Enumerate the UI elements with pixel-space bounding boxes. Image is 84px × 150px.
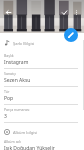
- staticText: Başlık: [4, 53, 14, 58]
- staticText: Albüm adı: [4, 139, 21, 144]
- staticText: 3: [4, 113, 7, 120]
- staticText: Instagram: [4, 59, 29, 66]
- button[interactable]: Düzenle: [64, 28, 78, 42]
- staticText: Parça numarası: [4, 107, 30, 112]
- button[interactable]: Başlık: [0, 51, 84, 69]
- button[interactable]: Diğer seçenekler: [70, 6, 82, 18]
- button[interactable]: Geri: [2, 6, 14, 18]
- staticText: Tür: [4, 89, 10, 94]
- button[interactable]: Şarkı Bilgisi: [0, 38, 84, 48]
- button[interactable]: Parça numarası: [0, 105, 84, 123]
- button[interactable]: Sanatçı: [0, 69, 84, 87]
- button[interactable]: Albüm adı: [0, 137, 84, 150]
- staticText: Albüm bilgisi: [13, 130, 38, 135]
- staticText: Işık Doğudan Yükselir: [4, 145, 55, 150]
- button[interactable]: Tür: [0, 87, 84, 105]
- staticText: Sezen Aksu: [4, 77, 31, 84]
- staticText: Pop: [4, 95, 14, 102]
- button[interactable]: Kaydet: [58, 6, 70, 18]
- button[interactable]: Albüm bilgisi: [0, 127, 84, 137]
- staticText: Sanatçı: [4, 71, 16, 76]
- staticText: Şarkı Bilgisi: [13, 41, 35, 46]
